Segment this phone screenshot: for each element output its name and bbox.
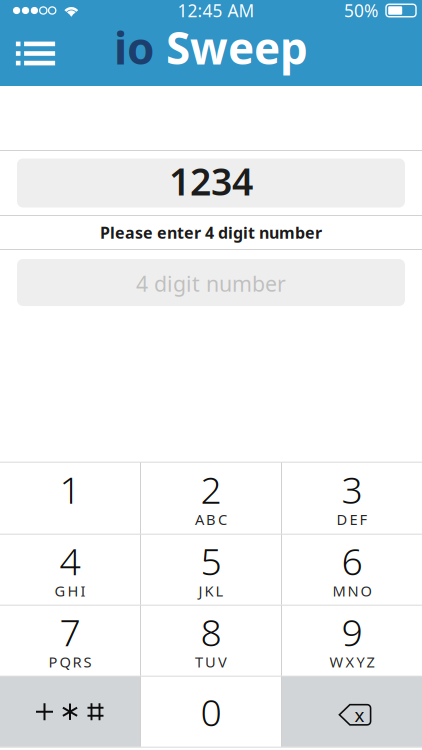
button[interactable]: 1 <box>0 463 140 534</box>
staticText: P Q R S <box>48 652 91 671</box>
staticText: W X Y Z <box>329 652 374 671</box>
staticText: 50% <box>344 0 378 22</box>
staticText: T U V <box>195 652 227 671</box>
staticText: 4 digit number <box>136 269 286 298</box>
button[interactable]: Delete <box>282 677 422 747</box>
button[interactable]: 4 <box>0 535 140 605</box>
staticText: 4 <box>59 536 80 586</box>
button[interactable]: Symbols <box>0 677 140 747</box>
staticText: J K L <box>198 581 223 600</box>
button[interactable]: 0 <box>141 677 281 747</box>
staticText: 0 <box>200 687 221 737</box>
staticText: Sweep <box>155 18 308 77</box>
button[interactable]: 6 <box>282 535 422 605</box>
staticText: 12:45 AM <box>177 0 254 22</box>
staticText: D E F <box>336 509 367 529</box>
staticText: 1234 <box>169 156 253 206</box>
button[interactable]: 8 <box>141 606 281 676</box>
staticText: 2 <box>200 464 221 514</box>
staticText: A B C <box>195 509 227 529</box>
button[interactable]: 3 <box>282 463 422 534</box>
staticText: G H I <box>54 581 85 600</box>
staticText: 6 <box>341 536 362 586</box>
staticText: 1 <box>59 464 80 514</box>
button[interactable]: 2 <box>141 463 281 534</box>
staticText: io <box>114 18 155 77</box>
staticText: 8 <box>200 607 221 657</box>
staticText: 9 <box>341 607 362 657</box>
button[interactable]: 5 <box>141 535 281 605</box>
staticText: 7 <box>59 607 80 657</box>
staticText: M N O <box>332 581 371 600</box>
button[interactable]: 7 <box>0 606 140 676</box>
staticText: Please enter 4 digit number <box>100 222 322 243</box>
button[interactable]: Menu <box>0 24 71 82</box>
staticText: 3 <box>341 464 362 514</box>
staticText: x <box>354 702 364 727</box>
button[interactable]: 9 <box>282 606 422 676</box>
staticText: 5 <box>200 536 221 586</box>
